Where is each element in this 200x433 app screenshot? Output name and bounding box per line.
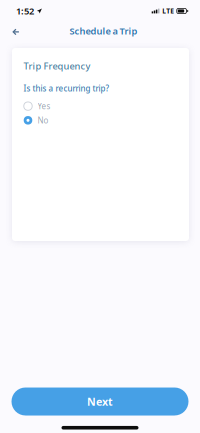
- staticText: Next: [87, 394, 113, 409]
- button[interactable]: No: [23, 113, 179, 127]
- staticText: Is this a recurring trip?: [23, 83, 109, 94]
- button[interactable]: Next: [11, 387, 188, 415]
- staticText: Trip Frequency: [23, 60, 90, 72]
- staticText: No: [37, 115, 48, 126]
- staticText: 1:52: [16, 5, 34, 17]
- staticText: Yes: [37, 101, 50, 111]
- button[interactable]: Yes: [23, 99, 179, 113]
- staticText: Schedule a Trip: [69, 25, 137, 37]
- staticText: LTE: [162, 7, 174, 15]
- button[interactable]: Back: [5, 22, 27, 42]
